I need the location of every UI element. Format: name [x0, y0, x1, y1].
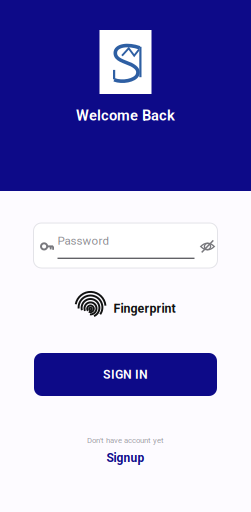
button[interactable]: Signup: [106, 451, 144, 465]
button[interactable]: Fingerprint: [75, 291, 175, 326]
staticText: Welcome Back: [76, 107, 175, 124]
staticText: Password: [57, 234, 109, 248]
staticText: SIGN IN: [103, 367, 148, 382]
button[interactable]: SIGN IN: [34, 353, 217, 396]
staticText: Signup: [106, 451, 144, 465]
staticText: Fingerprint: [113, 301, 175, 316]
staticText: Don't have account yet: [87, 436, 164, 445]
